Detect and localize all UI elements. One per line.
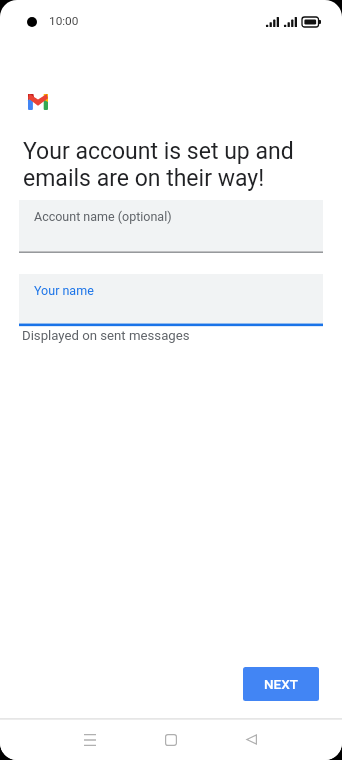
staticText: Displayed on sent messages [22,328,190,343]
button[interactable]: NEXT [243,667,319,701]
button[interactable]: Your name [19,274,323,327]
staticText: Account name (optional) [34,209,172,224]
staticText: 10:00 [49,14,79,28]
staticText: NEXT [264,676,298,692]
button[interactable]: Account name (optional) [19,200,323,253]
button[interactable]: Home [150,719,191,760]
staticText: Your account is set up and emails are on… [23,138,311,192]
button[interactable]: Back [231,719,272,760]
staticText: Your name [34,283,94,298]
button[interactable]: Recent apps [69,719,110,760]
